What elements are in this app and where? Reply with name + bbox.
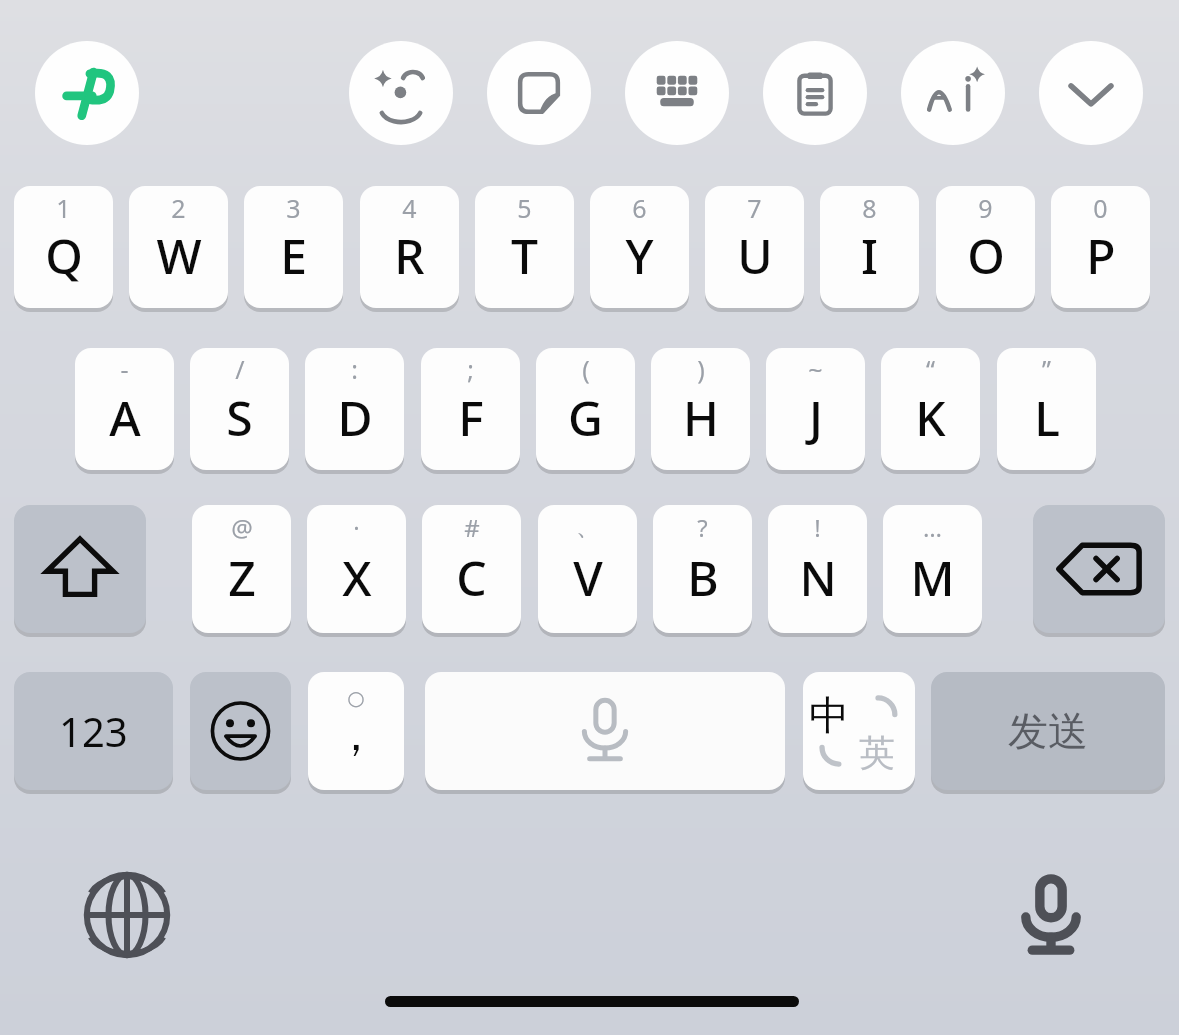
staticText: 中 <box>809 690 849 740</box>
staticText: ! <box>814 511 821 544</box>
button[interactable]: Sticker <box>487 41 591 145</box>
button[interactable]: R <box>360 186 459 308</box>
staticText: H <box>683 385 719 450</box>
staticText: / <box>235 352 245 386</box>
button[interactable]: Input method logo <box>35 41 139 145</box>
button[interactable]: A <box>75 348 174 470</box>
button[interactable]: Clipboard <box>763 41 867 145</box>
button[interactable]: N <box>768 505 867 633</box>
staticText: 英 <box>859 730 895 775</box>
button[interactable]: O <box>936 186 1035 308</box>
button[interactable]: Switch language <box>67 855 187 975</box>
button[interactable]: M <box>883 505 982 633</box>
button[interactable]: K <box>881 348 980 470</box>
staticText: 5 <box>517 191 532 225</box>
staticText: X <box>342 545 372 610</box>
staticText: J <box>809 385 823 450</box>
staticText: ( <box>582 352 590 386</box>
staticText: ; <box>467 352 474 386</box>
staticText: … <box>923 511 942 544</box>
staticText: 123 <box>59 704 128 758</box>
button[interactable]: Q <box>14 186 113 308</box>
staticText: C <box>456 545 487 610</box>
staticText: L <box>1034 385 1060 450</box>
button[interactable]: W <box>129 186 228 308</box>
staticText: @ <box>231 511 253 544</box>
staticText: Q <box>45 223 83 288</box>
staticText: W <box>156 223 202 288</box>
staticText: 9 <box>978 191 993 225</box>
staticText: 8 <box>862 191 877 225</box>
staticText: T <box>511 223 538 288</box>
button[interactable]: Chinese English toggle <box>803 672 915 790</box>
staticText: N <box>799 545 837 610</box>
button[interactable]: L <box>997 348 1096 470</box>
button[interactable]: Keyboard layout <box>625 41 729 145</box>
staticText: Z <box>228 545 256 610</box>
staticText: S <box>226 385 253 450</box>
button[interactable]: Space <box>425 672 785 790</box>
staticText: O <box>967 223 1005 288</box>
staticText: I <box>861 223 878 288</box>
staticText: # <box>464 511 480 544</box>
staticText: ” <box>1042 352 1051 386</box>
button[interactable]: Shift <box>14 505 146 633</box>
staticText: 1 <box>56 191 71 225</box>
staticText: ~ <box>808 352 823 386</box>
button[interactable]: AI assistant <box>901 41 1005 145</box>
button[interactable]: Y <box>590 186 689 308</box>
staticText: ) <box>697 352 705 386</box>
button[interactable]: G <box>536 348 635 470</box>
button[interactable]: H <box>651 348 750 470</box>
button[interactable]: Emoji <box>190 672 291 790</box>
button[interactable]: Voice input <box>991 852 1111 972</box>
staticText: F <box>458 385 484 450</box>
staticText: D <box>337 385 373 450</box>
staticText: ， <box>334 708 378 763</box>
staticText: 6 <box>632 191 647 225</box>
button[interactable]: F <box>421 348 520 470</box>
staticText: - <box>120 352 129 386</box>
staticText: K <box>915 385 946 450</box>
button[interactable]: B <box>653 505 752 633</box>
staticText: 、 <box>576 512 600 542</box>
button[interactable]: P <box>1051 186 1150 308</box>
staticText: “ <box>926 352 935 386</box>
staticText: 7 <box>747 191 762 225</box>
button[interactable]: D <box>305 348 404 470</box>
staticText: 4 <box>402 191 417 225</box>
button[interactable]: Comma <box>308 672 404 790</box>
staticText: 3 <box>286 191 301 225</box>
staticText: A <box>109 385 141 450</box>
staticText: 2 <box>171 191 186 225</box>
staticText: P <box>1086 223 1116 288</box>
staticText: G <box>568 385 603 450</box>
button[interactable]: Backspace <box>1033 505 1165 633</box>
button[interactable]: Numbers and symbols <box>14 672 173 790</box>
staticText: · <box>353 511 360 544</box>
button[interactable]: J <box>766 348 865 470</box>
button[interactable]: Collapse toolbar <box>1039 41 1143 145</box>
button[interactable]: I <box>820 186 919 308</box>
button[interactable]: T <box>475 186 574 308</box>
button[interactable]: Z <box>192 505 291 633</box>
staticText: 发送 <box>1008 706 1088 756</box>
staticText: V <box>573 545 603 610</box>
staticText: ○ <box>347 686 365 709</box>
staticText: : <box>351 352 358 386</box>
staticText: Y <box>625 223 654 288</box>
button[interactable]: Emoji stickers <box>349 41 453 145</box>
button[interactable]: E <box>244 186 343 308</box>
button[interactable]: U <box>705 186 804 308</box>
staticText: ? <box>697 511 708 544</box>
staticText: E <box>280 223 307 288</box>
button[interactable]: S <box>190 348 289 470</box>
button[interactable]: Send <box>931 672 1165 790</box>
button[interactable]: V <box>538 505 637 633</box>
button[interactable]: C <box>422 505 521 633</box>
button[interactable]: X <box>307 505 406 633</box>
staticText: 0 <box>1093 191 1108 225</box>
staticText: M <box>910 545 955 610</box>
staticText: B <box>687 545 719 610</box>
staticText: U <box>737 223 773 288</box>
